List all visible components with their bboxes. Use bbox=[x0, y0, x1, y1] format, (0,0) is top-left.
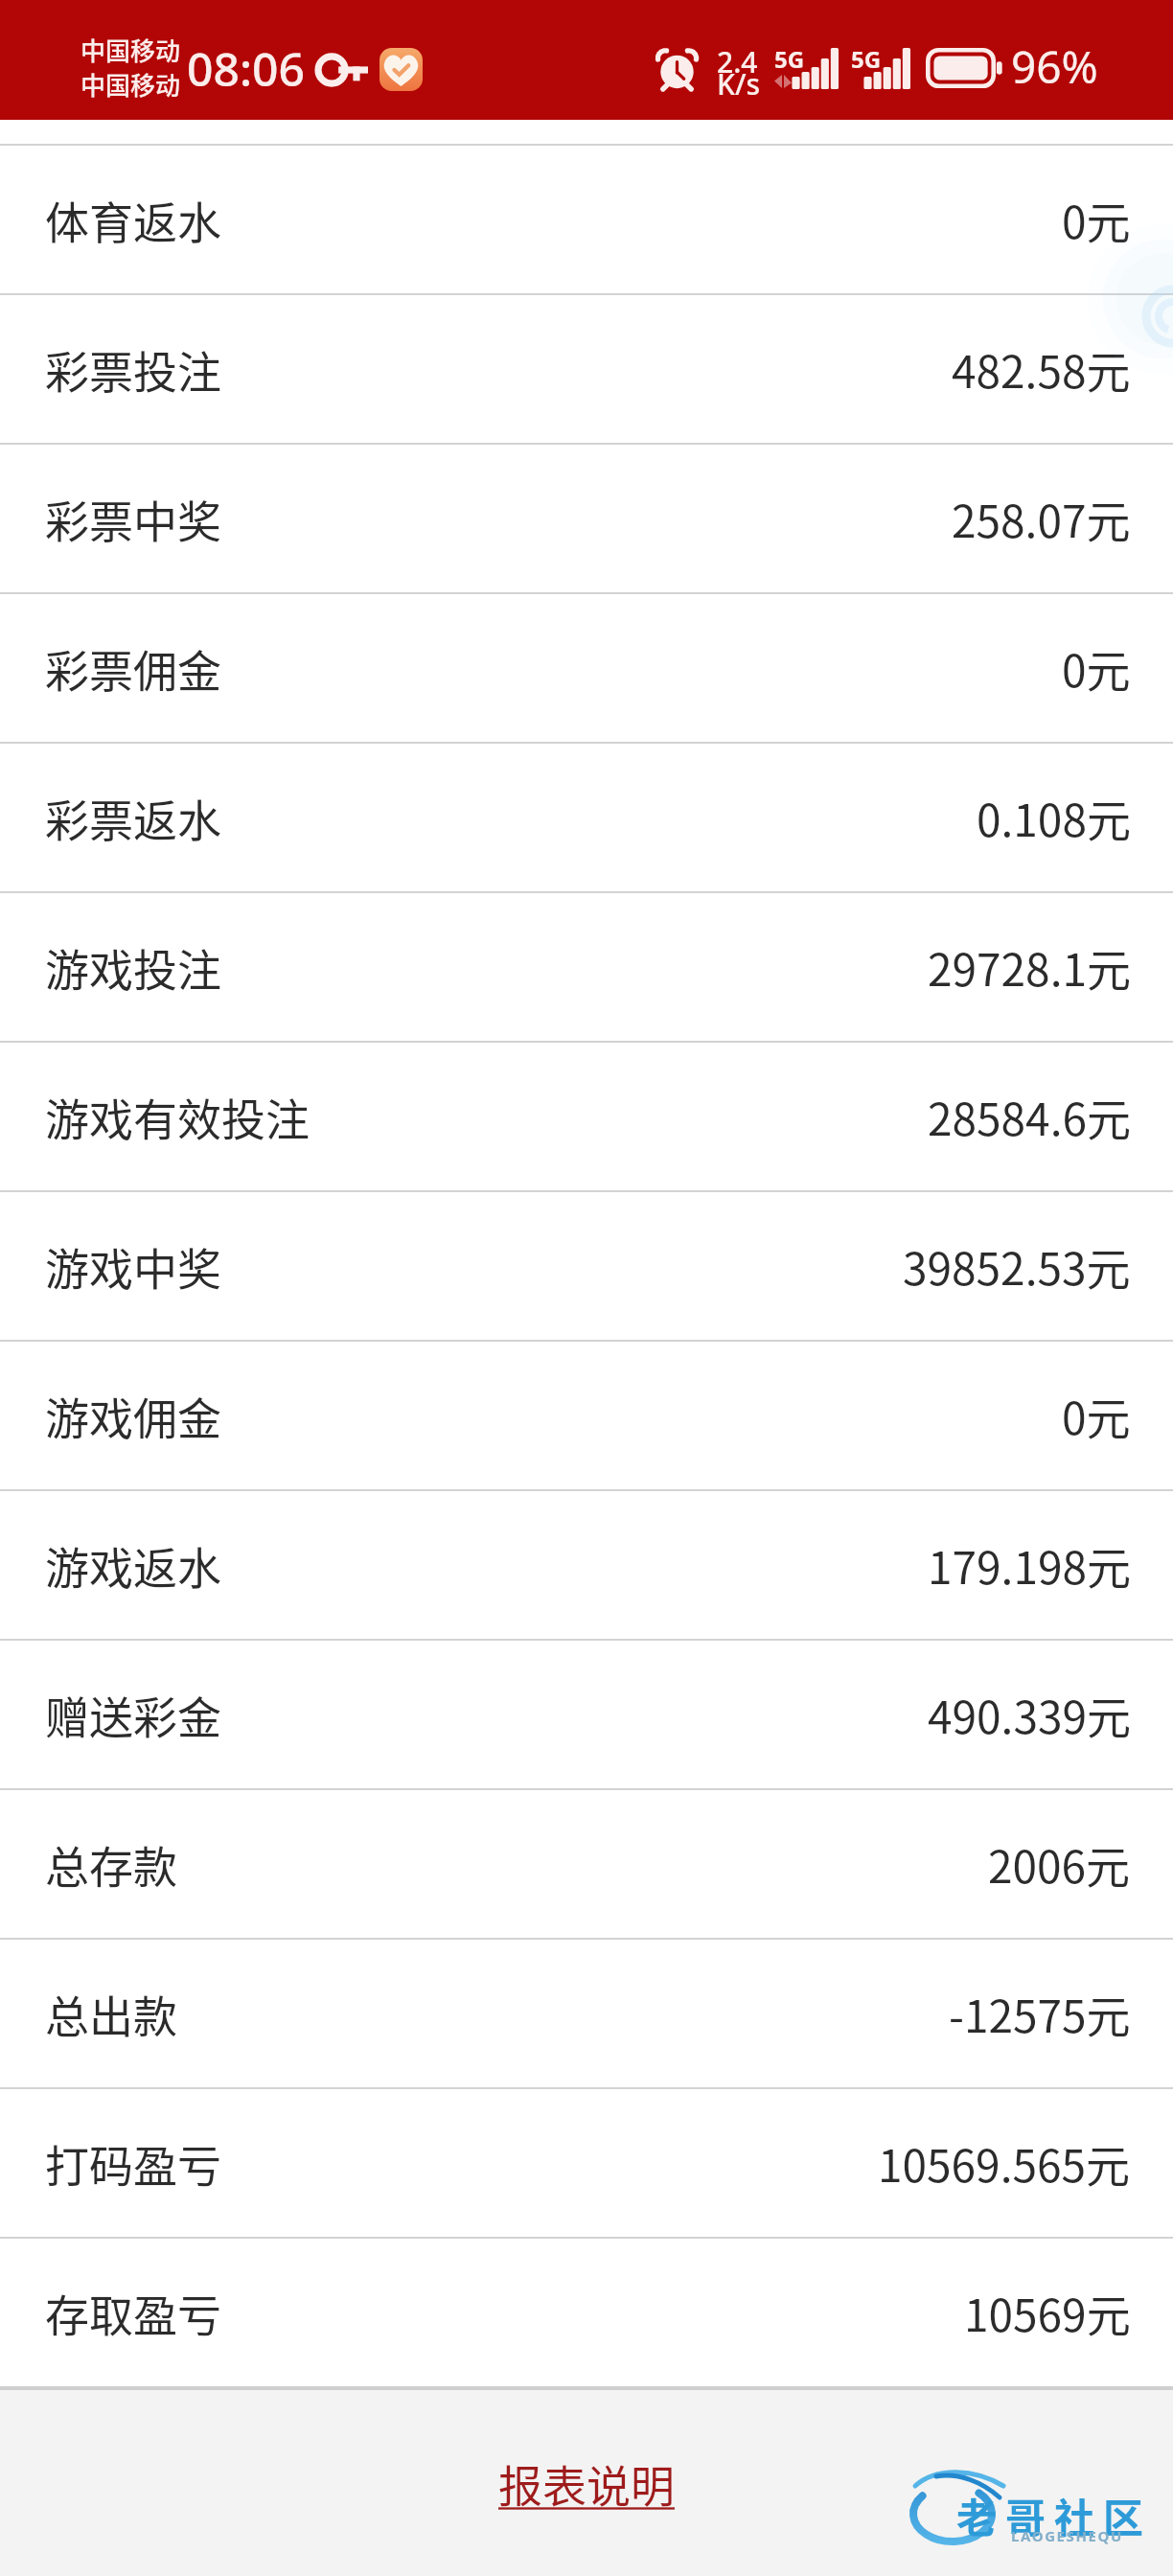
button[interactable]: 游戏中奖 bbox=[0, 1192, 1173, 1340]
staticText: 报表说明 bbox=[498, 2451, 675, 2516]
button[interactable]: 打码盈亏 bbox=[0, 2089, 1173, 2237]
button[interactable]: 存取盈亏 bbox=[0, 2239, 1173, 2386]
button[interactable]: 彩票投注 bbox=[0, 295, 1173, 443]
staticText: 体育返水 bbox=[45, 188, 221, 252]
staticText: 游戏有效投注 bbox=[45, 1085, 310, 1149]
staticText: 96% bbox=[1011, 36, 1098, 97]
button[interactable]: 彩票中奖 bbox=[0, 445, 1173, 592]
staticText: 482.58元 bbox=[952, 337, 1131, 402]
staticText: 0元 bbox=[1062, 1384, 1131, 1448]
staticText: 10569.565元 bbox=[878, 2131, 1131, 2196]
staticText: -12575元 bbox=[949, 1982, 1131, 2046]
staticText: 258.07元 bbox=[952, 487, 1131, 551]
button[interactable]: 总出款 bbox=[0, 1940, 1173, 2087]
staticText: 游戏中奖 bbox=[45, 1234, 221, 1299]
staticText: 彩票佣金 bbox=[45, 636, 221, 701]
staticText: 39852.53元 bbox=[903, 1234, 1131, 1299]
staticText: LAOGESHEQU bbox=[1011, 2526, 1123, 2545]
staticText: 5G bbox=[774, 43, 805, 75]
staticText: 游戏佣金 bbox=[45, 1384, 221, 1448]
staticText: 490.339元 bbox=[928, 1683, 1131, 1747]
staticText: 10569元 bbox=[964, 2281, 1131, 2345]
staticText: 总出款 bbox=[45, 1982, 177, 2046]
button[interactable]: 游戏有效投注 bbox=[0, 1043, 1173, 1190]
staticText: 179.198元 bbox=[928, 1533, 1131, 1598]
staticText: 打码盈亏 bbox=[45, 2131, 221, 2196]
button[interactable]: 体育返水 bbox=[0, 146, 1173, 293]
other: Floating assistant bbox=[0, 0, 1173, 2576]
button[interactable]: 报表说明 bbox=[475, 2438, 698, 2529]
button[interactable]: 总存款 bbox=[0, 1790, 1173, 1938]
staticText: 0元 bbox=[1062, 636, 1131, 701]
staticText: 赠送彩金 bbox=[45, 1683, 221, 1747]
staticText: 老哥社区 bbox=[956, 2486, 1153, 2544]
button[interactable]: 彩票佣金 bbox=[0, 594, 1173, 742]
staticText: 彩票投注 bbox=[45, 337, 221, 402]
staticText: 0元 bbox=[1062, 188, 1131, 252]
button[interactable]: 游戏投注 bbox=[0, 893, 1173, 1041]
button[interactable]: 彩票返水 bbox=[0, 744, 1173, 891]
staticText: 存取盈亏 bbox=[45, 2281, 221, 2345]
staticText: 2006元 bbox=[988, 1832, 1131, 1897]
staticText: 28584.6元 bbox=[928, 1085, 1131, 1149]
staticText: 彩票中奖 bbox=[45, 487, 221, 551]
staticText: 总存款 bbox=[45, 1832, 177, 1897]
staticText: 5G bbox=[851, 43, 882, 75]
button[interactable]: 游戏佣金 bbox=[0, 1342, 1173, 1489]
staticText: 08:06 bbox=[187, 37, 305, 100]
staticText: 游戏投注 bbox=[45, 935, 221, 1000]
staticText: 中国移动 bbox=[80, 32, 181, 68]
button[interactable]: 游戏返水 bbox=[0, 1491, 1173, 1639]
staticText: 中国移动 bbox=[80, 66, 181, 103]
staticText: 游戏返水 bbox=[45, 1533, 221, 1598]
staticText: 29728.1元 bbox=[928, 935, 1131, 1000]
staticText: 彩票返水 bbox=[45, 786, 221, 850]
button[interactable]: 赠送彩金 bbox=[0, 1641, 1173, 1788]
staticText: 0.108元 bbox=[977, 786, 1131, 850]
staticText: K/s bbox=[717, 64, 761, 103]
staticText: 2.4 bbox=[717, 42, 758, 81]
